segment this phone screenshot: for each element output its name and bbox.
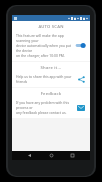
button[interactable]: Share xyxy=(77,75,86,84)
button[interactable]: Share it... xyxy=(12,62,90,87)
staticText: This feature will make the app scanning … xyxy=(16,33,72,58)
button[interactable]: Recent apps xyxy=(68,151,77,160)
button[interactable]: Send feedback email xyxy=(76,104,86,112)
button[interactable]: Auto scan toggle xyxy=(75,42,86,49)
staticText: AUTO SCAN xyxy=(16,24,86,30)
button[interactable]: Feedback xyxy=(12,88,90,118)
staticText: If you have any problem with this proces… xyxy=(16,100,73,115)
button[interactable]: Home xyxy=(47,151,56,160)
button[interactable]: AUTO SCAN xyxy=(12,21,90,61)
button[interactable]: Back xyxy=(25,151,34,160)
staticText: Share it... xyxy=(16,65,86,71)
staticText: Feedback xyxy=(16,91,86,97)
staticText: Help us to share this app with your frie… xyxy=(16,74,74,84)
